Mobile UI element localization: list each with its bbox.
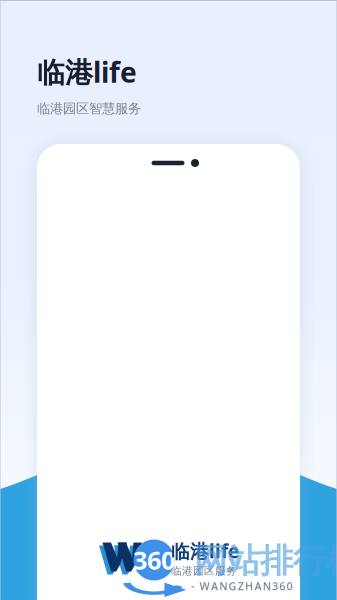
staticText: 临港园区服务 — [171, 564, 237, 577]
staticText: 临港life — [171, 539, 239, 563]
staticText: 网站排行榜 — [194, 540, 337, 581]
staticText: - WANGZHAN360 — [191, 579, 293, 593]
staticText: 临港life — [37, 53, 137, 90]
staticText: 360 — [133, 543, 175, 577]
staticText: 临港园区智慧服务 — [37, 100, 141, 117]
